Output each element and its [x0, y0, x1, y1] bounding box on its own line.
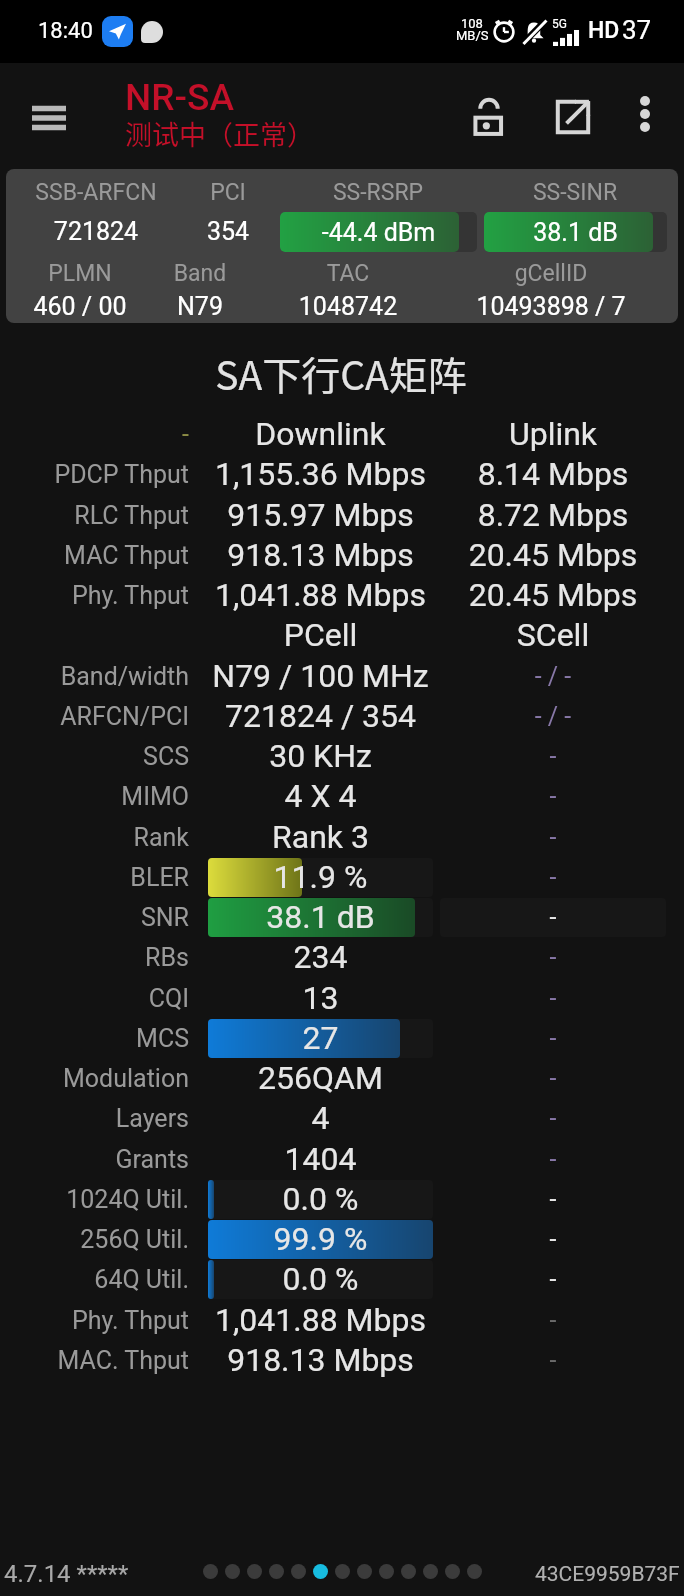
staticText: 30 KHz: [208, 737, 433, 775]
staticText: 721824: [6, 217, 206, 246]
button[interactable]: MAC. Thput: [0, 1340, 684, 1380]
staticText: -: [440, 1104, 666, 1133]
staticText: HD: [588, 17, 620, 44]
staticText: -: [440, 1225, 666, 1254]
staticText: -: [440, 1185, 666, 1214]
staticText: MCS: [0, 1024, 189, 1053]
staticText: 1024Q Util.: [0, 1185, 189, 1214]
button[interactable]: Layers: [0, 1098, 684, 1138]
button[interactable]: Unlock: [455, 83, 523, 151]
staticText: 1,041.88 Mbps: [208, 1301, 433, 1339]
staticText: gCellID: [451, 260, 651, 287]
staticText: 4: [208, 1099, 433, 1137]
staticText: MAC. Thput: [0, 1346, 189, 1375]
staticText: PCI: [168, 179, 288, 206]
staticText: -: [440, 823, 666, 852]
staticText: Modulation: [0, 1064, 189, 1093]
button[interactable]: Open in new window: [539, 83, 607, 151]
button[interactable]: PCell: [0, 615, 684, 655]
staticText: NR-SA: [125, 76, 235, 119]
staticText: 915.97 Mbps: [208, 496, 433, 534]
staticText: -: [440, 1145, 666, 1174]
staticText: -44.4 dBm: [280, 218, 477, 247]
staticText: 256Q Util.: [0, 1225, 189, 1254]
staticText: - / -: [440, 662, 666, 691]
staticText: SA下行CA矩阵: [171, 345, 511, 401]
staticText: - / -: [440, 702, 666, 731]
button[interactable]: 256Q Util.: [0, 1219, 684, 1259]
staticText: PCell: [208, 616, 433, 654]
staticText: N79: [130, 292, 270, 321]
staticText: 721824 / 354: [208, 697, 433, 735]
button[interactable]: More options: [614, 83, 676, 145]
button[interactable]: MAC Thput: [0, 535, 684, 575]
staticText: 99.9 %: [208, 1220, 433, 1258]
button[interactable]: CQI: [0, 978, 684, 1018]
staticText: 10493898 / 7: [431, 292, 671, 321]
staticText: ARFCN/PCI: [0, 702, 189, 731]
button[interactable]: Phy. Thput: [0, 1300, 684, 1340]
staticText: 4 X 4: [208, 777, 433, 815]
button[interactable]: 64Q Util.: [0, 1259, 684, 1299]
staticText: 108: [461, 16, 483, 31]
staticText: 460 / 00: [6, 292, 160, 321]
staticText: -: [440, 863, 666, 892]
button[interactable]: MIMO: [0, 776, 684, 816]
staticText: 20.45 Mbps: [440, 536, 666, 574]
staticText: Grants: [0, 1145, 189, 1174]
button[interactable]: Modulation: [0, 1058, 684, 1098]
staticText: -: [440, 1346, 666, 1375]
staticText: MB/S: [456, 28, 489, 43]
staticText: Rank: [0, 823, 189, 852]
staticText: MAC Thput: [0, 541, 189, 570]
staticText: SCS: [0, 742, 189, 771]
button[interactable]: RBs: [0, 937, 684, 977]
staticText: SS-RSRP: [278, 179, 478, 206]
staticText: 0.0 %: [208, 1260, 433, 1298]
button[interactable]: ARFCN/PCI: [0, 696, 684, 736]
staticText: 43CE9959B73F: [535, 1562, 680, 1587]
staticText: 8.72 Mbps: [440, 496, 666, 534]
button[interactable]: MCS: [0, 1018, 684, 1058]
button[interactable]: SNR: [0, 897, 684, 937]
staticText: Uplink: [440, 415, 666, 453]
staticText: Phy. Thput: [0, 1306, 189, 1335]
staticText: N79 / 100 MHz: [208, 657, 433, 695]
staticText: Band: [130, 260, 270, 287]
button[interactable]: PDCP Thput: [0, 454, 684, 494]
staticText: 234: [208, 938, 433, 976]
button[interactable]: Grants: [0, 1139, 684, 1179]
staticText: SNR: [0, 903, 189, 932]
staticText: 1048742: [248, 292, 448, 321]
button[interactable]: -: [0, 414, 684, 454]
staticText: 13: [208, 979, 433, 1017]
staticText: 0.0 %: [208, 1180, 433, 1218]
button[interactable]: Navigation menu: [14, 83, 84, 153]
button[interactable]: BLER: [0, 857, 684, 897]
staticText: CQI: [0, 984, 189, 1013]
staticText: RLC Thput: [0, 501, 189, 530]
staticText: 256QAM: [208, 1059, 433, 1097]
staticText: -: [440, 782, 666, 811]
staticText: 27: [208, 1019, 433, 1057]
staticText: PDCP Thput: [0, 460, 189, 489]
staticText: MIMO: [0, 782, 189, 811]
button[interactable]: Rank: [0, 817, 684, 857]
staticText: TAC: [268, 260, 428, 287]
staticText: 1404: [208, 1140, 433, 1178]
button[interactable]: 1024Q Util.: [0, 1179, 684, 1219]
button[interactable]: SCS: [0, 736, 684, 776]
staticText: 38.1 dB: [208, 898, 433, 936]
staticText: -: [440, 1265, 666, 1294]
staticText: 354: [168, 217, 288, 246]
button[interactable]: Band/width: [0, 656, 684, 696]
staticText: Phy. Thput: [0, 581, 189, 610]
staticText: 11.9 %: [208, 858, 433, 896]
staticText: Band/width: [0, 662, 189, 691]
button[interactable]: RLC Thput: [0, 495, 684, 535]
staticText: 20.45 Mbps: [440, 576, 666, 614]
staticText: -: [440, 1024, 666, 1053]
staticText: RBs: [0, 943, 189, 972]
button[interactable]: Phy. Thput: [0, 575, 684, 615]
